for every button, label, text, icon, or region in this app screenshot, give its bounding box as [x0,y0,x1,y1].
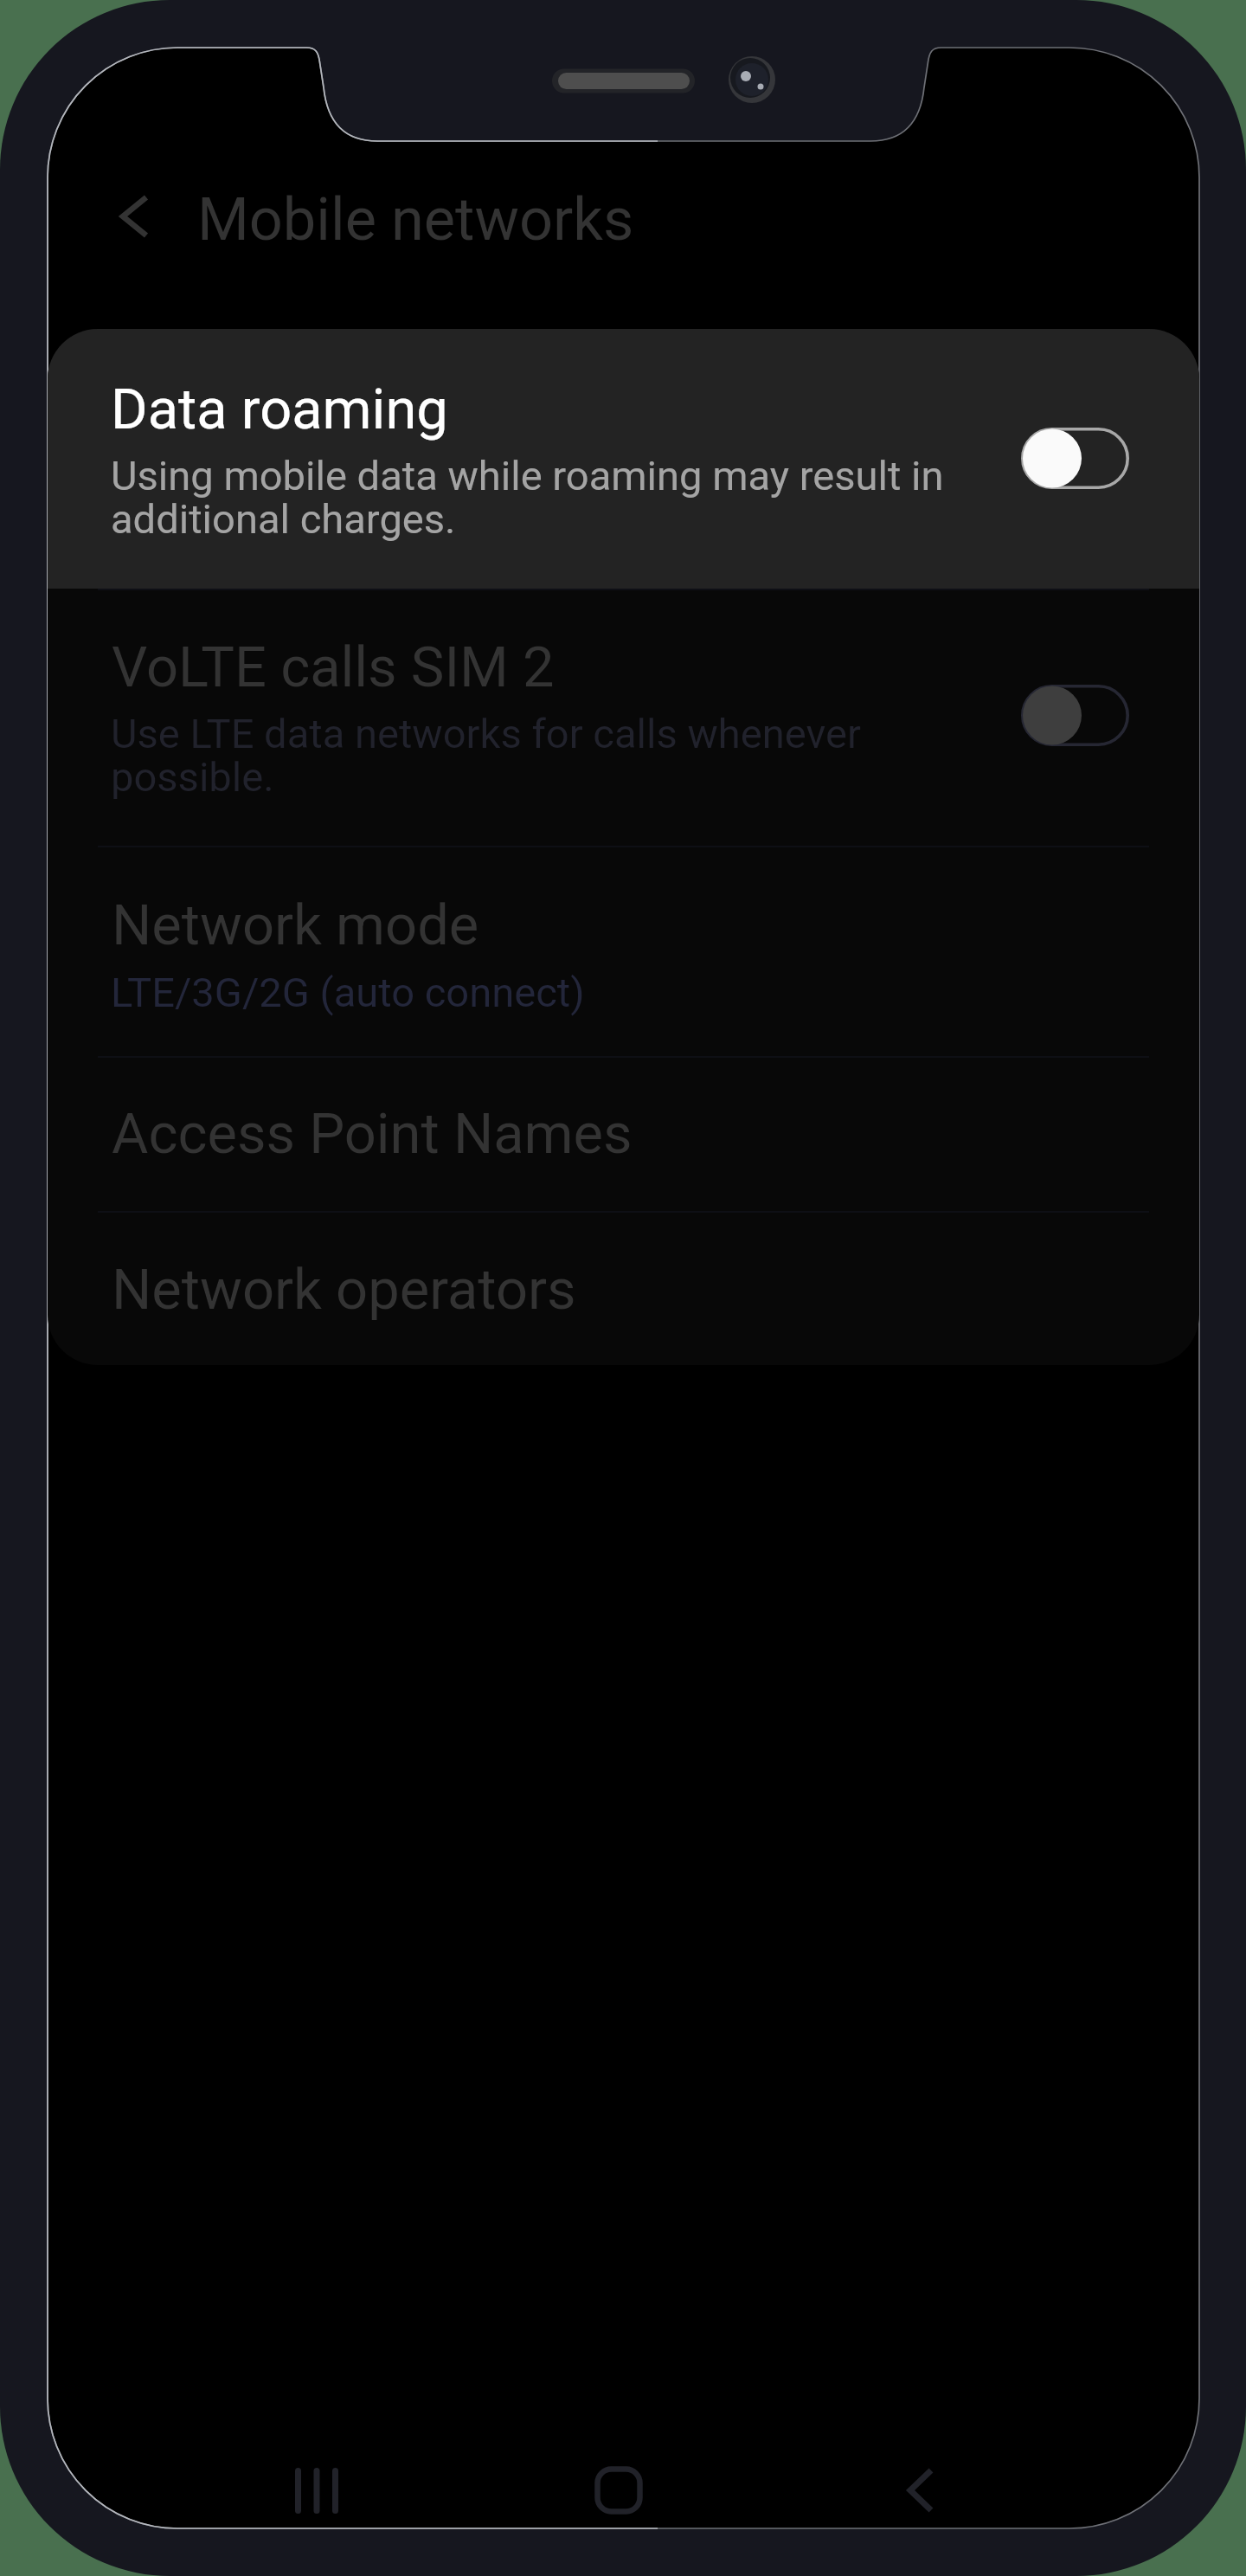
button[interactable]: Navigate up [81,166,185,270]
staticText: Network mode [112,892,479,958]
button[interactable]: Back [869,2451,973,2529]
button[interactable]: VoLTE calls SIM 2 [48,589,1199,846]
button[interactable]: Access Point Names [48,1056,1199,1211]
button[interactable]: Home [567,2451,671,2529]
staticText: Network operators [112,1257,576,1323]
staticText: Using mobile data while roaming may resu… [111,452,944,544]
button[interactable]: Network operators [48,1211,1199,1365]
staticText: Mobile networks [197,184,634,254]
staticText: Use LTE data networks for calls whenever… [111,710,861,802]
staticText: VoLTE calls SIM 2 [112,634,555,700]
staticText: LTE/3G/2G (auto connect) [111,969,585,1016]
button[interactable]: Data roaming [48,329,1199,589]
button[interactable]: Network mode [48,846,1199,1056]
button[interactable]: Recent apps [265,2451,369,2529]
staticText: Access Point Names [112,1101,633,1167]
staticText: Data roaming [111,377,448,442]
